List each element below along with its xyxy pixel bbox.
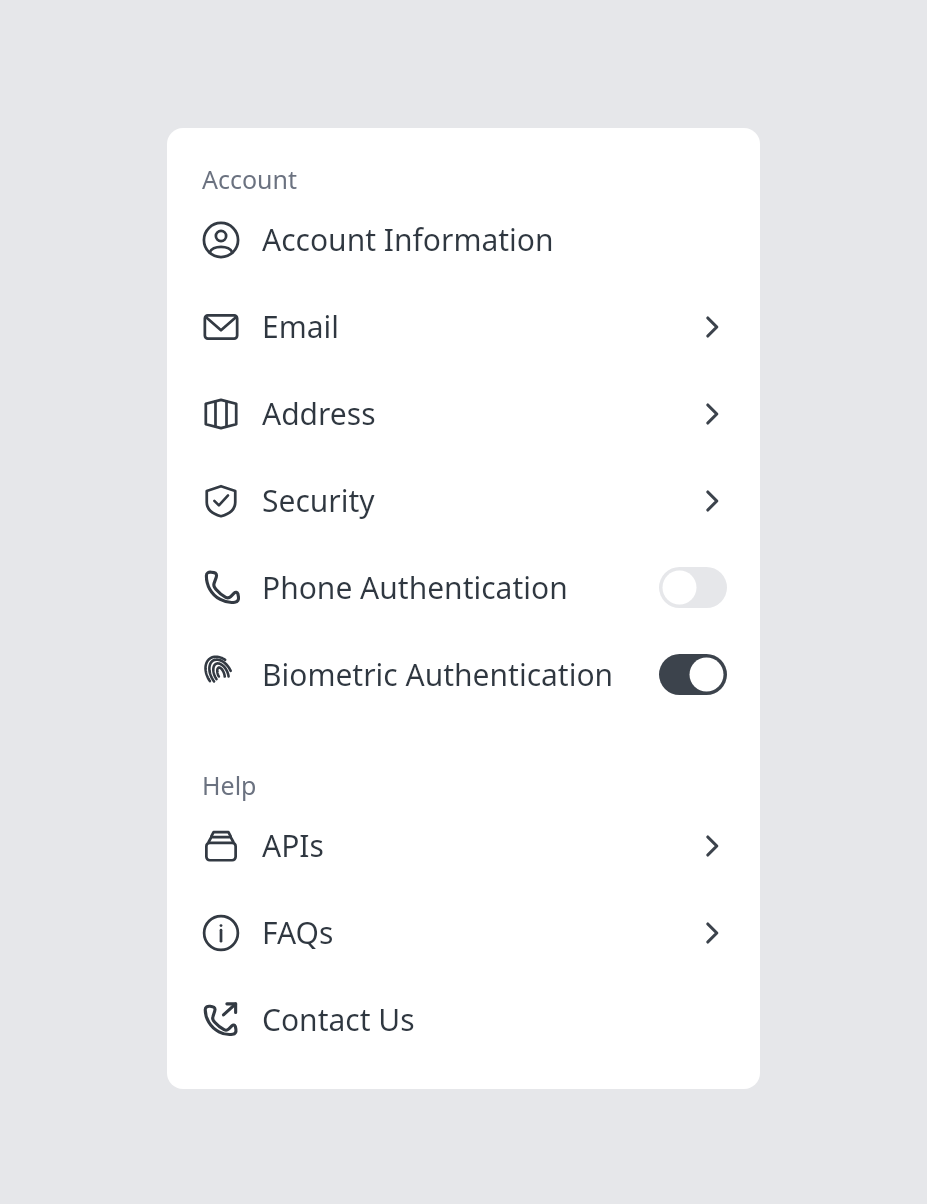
other: Open (697, 918, 727, 948)
button[interactable]: APIs (167, 802, 760, 889)
staticText: FAQs (262, 912, 334, 953)
staticText: Address (262, 393, 376, 434)
other: Phone Authentication (202, 569, 240, 607)
button[interactable]: Contact Us (167, 976, 760, 1063)
button[interactable]: FAQs (167, 889, 760, 976)
staticText: Security (262, 480, 375, 521)
button[interactable]: Email (167, 283, 760, 370)
button[interactable]: Account Information (167, 196, 760, 283)
button[interactable]: Biometric Authentication (167, 631, 760, 718)
staticText: Account (202, 162, 298, 196)
other: Open (697, 399, 727, 429)
other: Address (202, 395, 240, 433)
other: Account Information (202, 221, 240, 259)
staticText: Contact Us (262, 999, 415, 1040)
button[interactable]: Phone Authentication (167, 544, 760, 631)
other: Open (697, 312, 727, 342)
staticText: Phone Authentication (262, 567, 568, 608)
other: Open (697, 831, 727, 861)
button[interactable]: Toggle off (659, 567, 727, 608)
other: Contact Us (202, 1001, 240, 1039)
staticText: Help (202, 768, 257, 802)
other: Security (202, 482, 240, 520)
staticText: Biometric Authentication (262, 654, 614, 695)
other: APIs (202, 827, 240, 865)
other: FAQs (202, 914, 240, 952)
button[interactable]: Toggle on (659, 654, 727, 695)
button[interactable]: Security (167, 457, 760, 544)
button[interactable]: Address (167, 370, 760, 457)
other: Biometric Authentication (202, 656, 240, 694)
staticText: Email (262, 306, 340, 347)
other: Email (202, 308, 240, 346)
staticText: Account Information (262, 219, 554, 260)
staticText: APIs (262, 825, 324, 866)
other: Open (697, 486, 727, 516)
